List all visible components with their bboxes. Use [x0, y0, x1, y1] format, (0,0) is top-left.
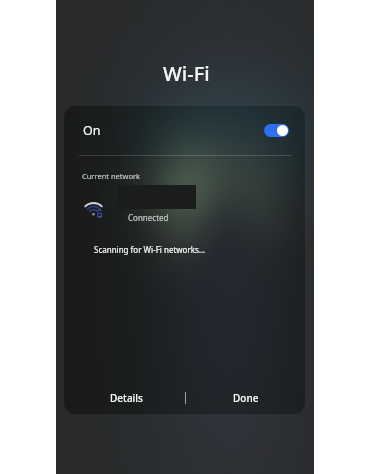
- staticText: On: [83, 122, 101, 139]
- staticText: Details: [110, 391, 143, 405]
- staticText: Scanning for Wi-Fi networks…: [94, 244, 206, 255]
- button[interactable]: Wi-Fi on: [264, 124, 289, 137]
- other: Secured Wi-Fi network: [84, 202, 106, 222]
- staticText: Wi-Fi: [163, 60, 210, 87]
- staticText: Current network: [82, 171, 141, 181]
- button[interactable]: Done: [186, 379, 305, 414]
- button[interactable]: Details: [66, 379, 186, 414]
- staticText: Connected: [128, 212, 169, 223]
- staticText: Done: [233, 391, 259, 405]
